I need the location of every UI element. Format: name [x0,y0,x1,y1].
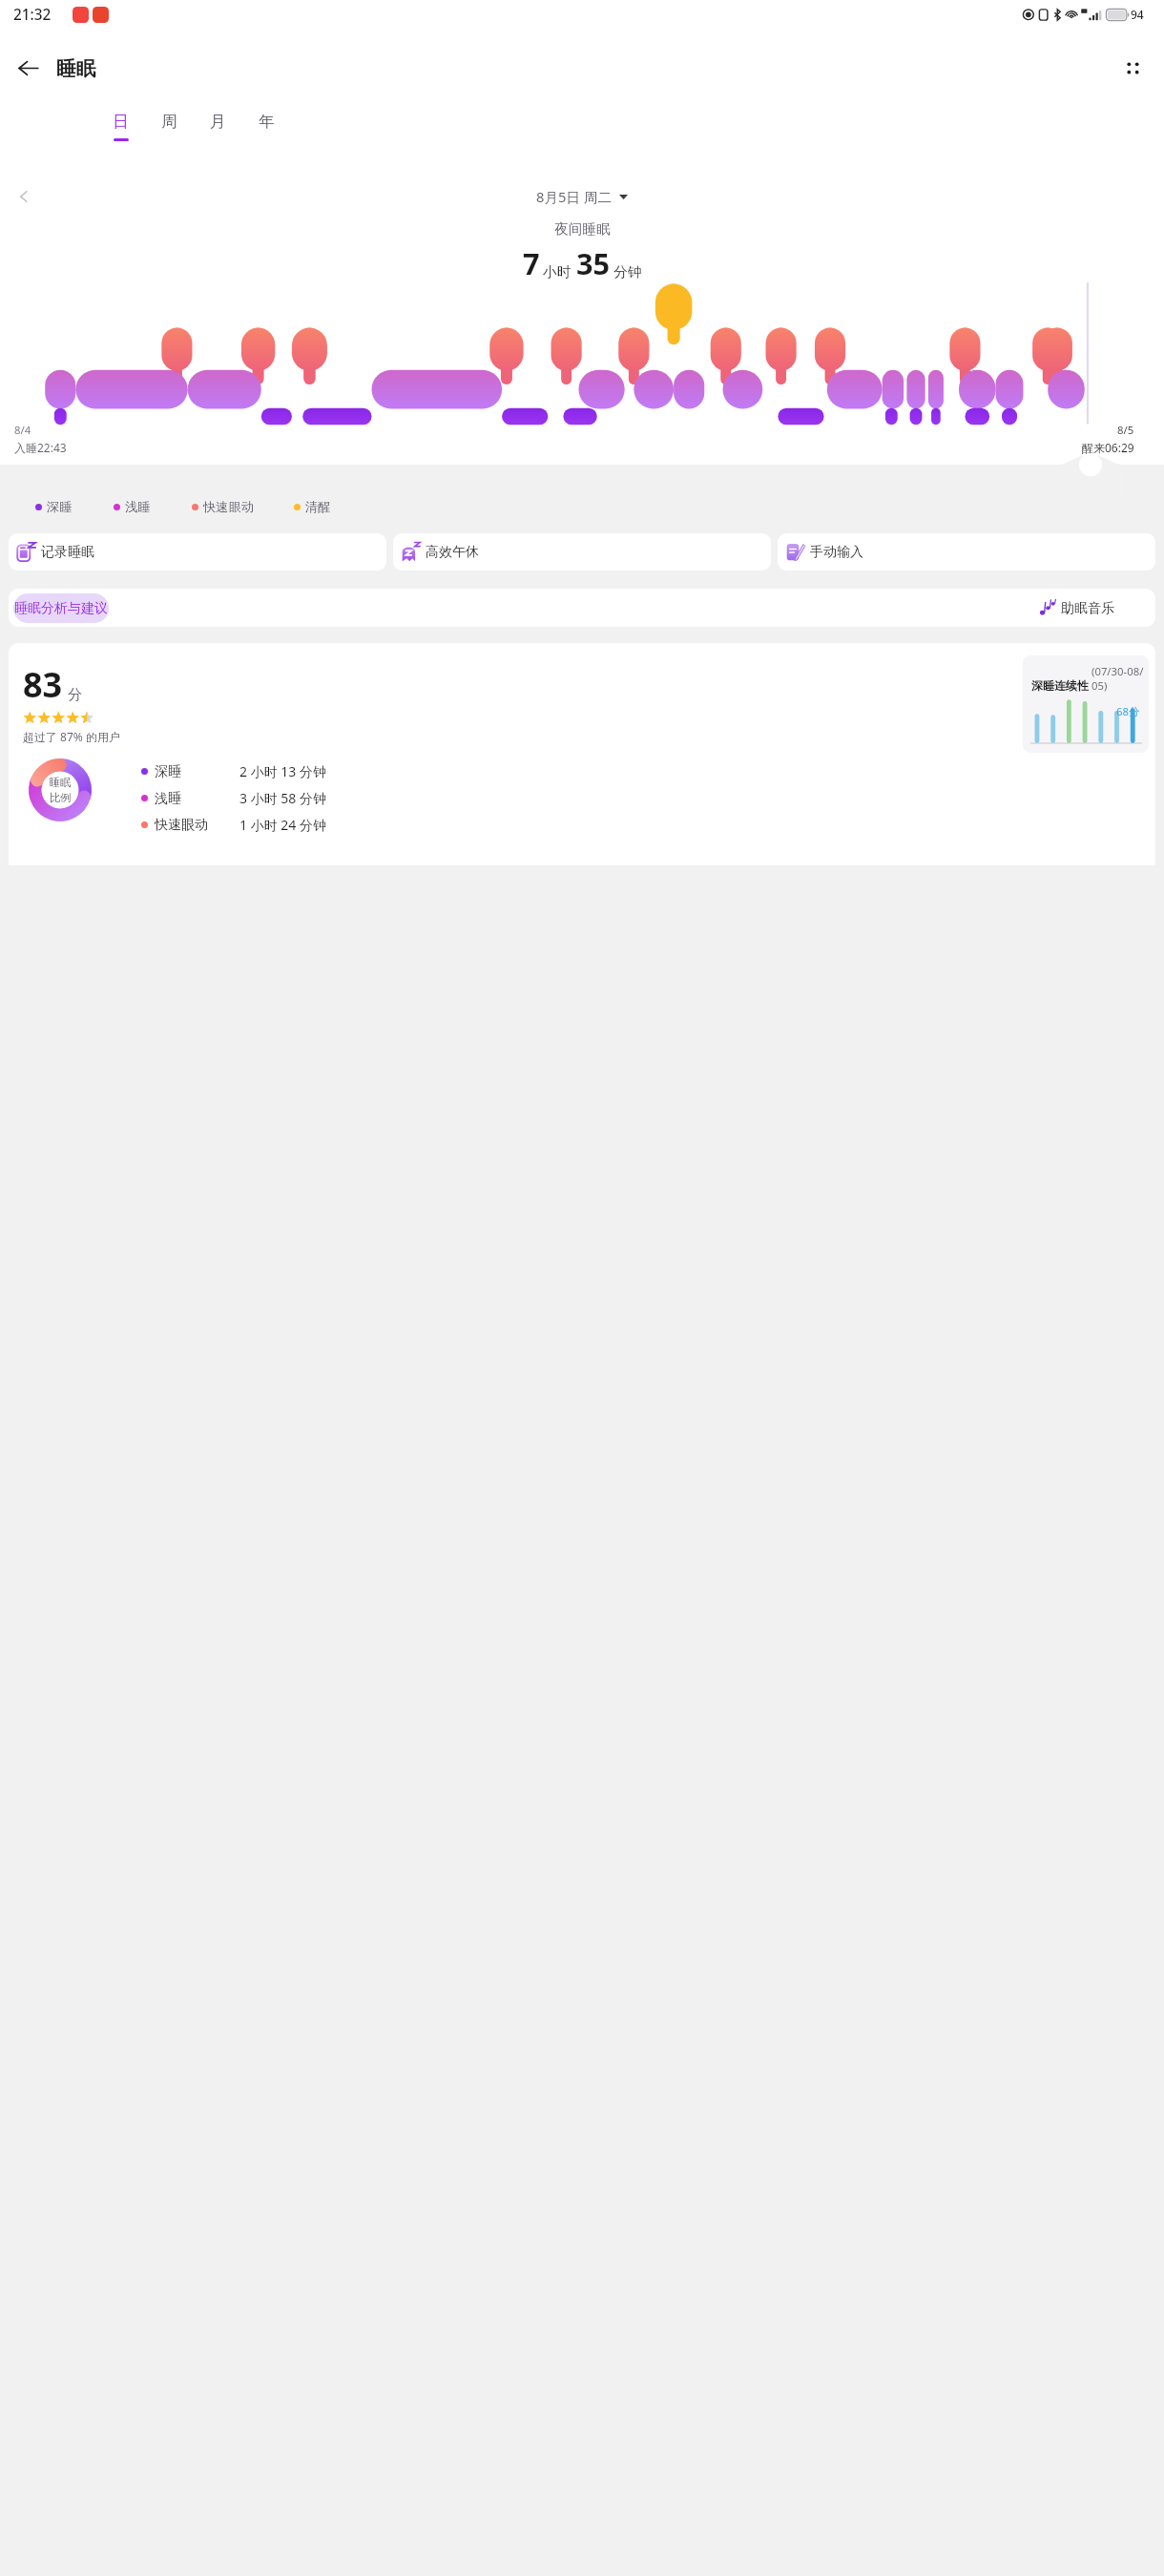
button[interactable]: 快速眼动 [192,499,255,515]
button[interactable]: 浅睡 [114,499,151,515]
staticText: 深睡 [155,763,181,780]
button[interactable]: Add sleep record [352,453,375,476]
staticText: 浅睡 [125,499,151,515]
staticText: 夜间睡眠 [554,220,611,238]
staticText: 2 小时 13 分钟 [239,762,326,780]
button[interactable]: 高效午休 [393,533,771,571]
button[interactable]: 8月5日 周二 [536,187,628,206]
staticText: 月 [210,112,226,132]
staticText: (07/30-08/05) [1091,664,1149,693]
staticText: 分钟 [613,263,642,280]
staticText: 1 小时 24 分钟 [239,816,326,834]
staticText: 83 [23,661,63,708]
staticText: 8/5 [1117,423,1134,437]
staticText: 深睡连续性 [1031,678,1089,693]
staticText: 分 [68,685,83,703]
button[interactable]: 周 [150,112,189,150]
staticText: 醒来06:29 [1082,440,1134,455]
staticText: 比例 [50,791,72,804]
staticText: 助眠音乐 [1061,600,1114,617]
button[interactable]: 深睡 [35,499,73,515]
staticText: 快速眼动 [203,499,255,515]
staticText: 21:32 [13,5,52,25]
staticText: 睡眠分析与建议 [14,600,108,617]
staticText: 8/4 [14,423,31,437]
staticText: 超过了 87% 的用户 [23,729,120,744]
staticText: 睡眠 [56,56,96,81]
button[interactable]: 清醒 [294,499,331,515]
button[interactable]: 手动输入 [778,533,1155,571]
staticText: 68分 [1116,704,1140,718]
staticText: 手动输入 [810,544,863,561]
staticText: 记录睡眠 [41,544,94,561]
button[interactable]: 助眠音乐 [1040,599,1114,617]
button[interactable]: 记录睡眠 [9,533,386,571]
staticText: 3 小时 58 分钟 [239,789,326,807]
button[interactable]: 月 [198,112,238,150]
staticText: 入睡22:43 [14,440,67,455]
button[interactable]: 深睡连续性 [1023,655,1149,753]
button[interactable]: 年 [247,112,286,150]
staticText: 35 [576,243,611,283]
staticText: 8月5日 周二 [536,187,613,206]
staticText: 深睡 [47,499,73,515]
staticText: 清醒 [305,499,331,515]
button[interactable]: 日 [101,112,140,150]
staticText: 快速眼动 [155,817,208,834]
staticText: 94 [1131,7,1144,22]
staticText: 浅睡 [155,790,181,807]
staticText: 睡眠 [50,776,72,789]
button[interactable]: More options [1115,51,1151,86]
button[interactable]: 睡眠分析与建议 [13,593,109,623]
button[interactable]: Back [10,51,46,86]
staticText: 7 [523,243,540,283]
button[interactable]: Previous day [9,181,38,211]
staticText: 日 [113,112,129,132]
staticText: 年 [259,112,275,132]
staticText: 周 [161,112,177,132]
staticText: 高效午休 [426,544,479,561]
staticText: 小时 [543,263,572,280]
